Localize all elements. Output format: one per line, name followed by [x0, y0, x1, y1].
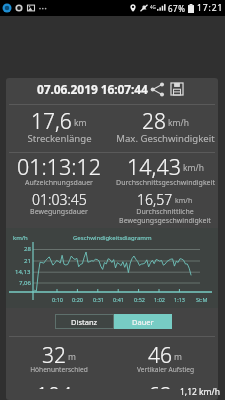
staticText: Dauer — [132, 317, 154, 327]
button[interactable]: Distanz — [56, 315, 113, 328]
staticText: 62 — [148, 381, 172, 389]
staticText: km/h — [13, 234, 28, 242]
staticText: Bewegungsdauer — [30, 207, 88, 217]
staticText: 17:21 — [197, 2, 224, 14]
staticText: 1:13 — [174, 296, 185, 303]
staticText: Streckenlänge — [27, 132, 92, 145]
staticText: 46 — [148, 341, 172, 370]
staticText: km/h — [168, 117, 189, 129]
staticText: m — [68, 351, 76, 363]
staticText: Durchschnittliche Bewegungsgeschwindigke… — [119, 207, 211, 225]
staticText: 28 — [142, 107, 166, 136]
staticText: km/h — [183, 162, 204, 174]
staticText: 16,57 — [137, 190, 173, 209]
staticText: 1,12 km/h — [180, 386, 220, 398]
staticText: 14,43 — [127, 152, 181, 181]
button[interactable]: Dauer — [114, 314, 172, 329]
staticText: m — [174, 351, 182, 363]
staticText: 07.06.2019 16:07:44 — [37, 81, 148, 97]
button[interactable]: Speichern — [170, 82, 184, 96]
staticText: 01:13:12 — [17, 152, 102, 181]
staticText: 01:03:45 — [32, 190, 87, 209]
staticText: Aufzeichnungsdauer — [25, 178, 93, 188]
staticText: St:M — [196, 296, 208, 303]
staticText: 17,6 — [31, 107, 72, 136]
staticText: Vertikaler Aufstieg — [137, 365, 194, 374]
staticText: km/h — [175, 196, 193, 206]
staticText: 28 — [24, 245, 31, 253]
staticText: 21 — [24, 257, 31, 265]
staticText: 67% — [168, 3, 186, 14]
staticText: 0:52 — [134, 296, 145, 303]
staticText: 7,06 — [19, 279, 31, 287]
staticText: Höhenunterschied — [30, 365, 88, 374]
staticText: Geschwindigkeitsdiagramm — [73, 234, 152, 242]
staticText: 32 — [42, 341, 66, 370]
staticText: 0:31 — [93, 296, 104, 303]
staticText: km — [74, 117, 87, 129]
staticText: Max. Geschwindigkeit — [116, 132, 215, 145]
staticText: 4G — [150, 4, 156, 10]
staticText: 1:02 — [154, 296, 165, 303]
staticText: 14,13 — [15, 268, 31, 276]
staticText: Distanz — [71, 317, 98, 327]
staticText: 104 — [36, 381, 72, 389]
staticText: 0:10 — [52, 296, 63, 303]
staticText: 0:41 — [113, 296, 124, 303]
staticText: 0:20 — [72, 296, 83, 303]
staticText: Durchschnittsgeschwindigkeit — [116, 178, 215, 188]
button[interactable]: Teilen — [150, 82, 165, 97]
